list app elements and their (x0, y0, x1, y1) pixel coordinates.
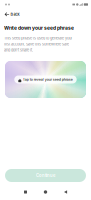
button[interactable]: Home (35, 186, 55, 198)
button[interactable]: Back (55, 186, 75, 198)
button[interactable]: Back (1, 10, 22, 19)
staticText: This seed phrase is used to generate you… (4, 36, 72, 40)
staticText: Tap to reveal your seed phrase (23, 77, 73, 82)
staticText: Back (10, 12, 19, 17)
staticText: and don't share it. (4, 48, 33, 52)
button[interactable]: Recent apps (15, 186, 35, 198)
staticText: Write down your seed phrase (4, 25, 74, 31)
staticText: first account. Save this somewhere safe (4, 42, 69, 46)
button[interactable]: Continue (5, 169, 86, 182)
staticText: Continue (36, 173, 55, 178)
button[interactable]: Tap to reveal your seed phrase (14, 75, 77, 83)
